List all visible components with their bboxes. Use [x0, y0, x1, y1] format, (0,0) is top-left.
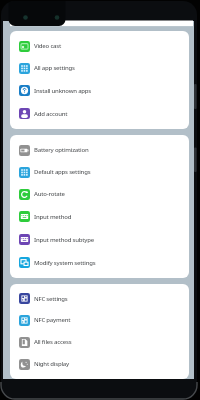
staticText: Battery optimization: [34, 146, 89, 154]
staticText: Night display: [34, 360, 69, 368]
button[interactable]: NFC payment: [10, 309, 189, 331]
button[interactable]: Input method subtype: [10, 228, 189, 251]
button[interactable]: Modify system settings: [10, 251, 189, 274]
button[interactable]: All files access: [10, 331, 189, 353]
staticText: NFC payment: [34, 316, 71, 324]
staticText: Auto-rotate: [34, 190, 65, 198]
staticText: Video cast: [34, 42, 62, 50]
staticText: Input method: [34, 213, 72, 221]
button[interactable]: All app settings: [10, 57, 189, 79]
staticText: Add account: [34, 110, 68, 118]
staticText: Modify system settings: [34, 259, 96, 267]
button[interactable]: Default apps settings: [10, 161, 189, 183]
staticText: All app settings: [34, 64, 75, 72]
staticText: All files access: [34, 338, 72, 346]
button[interactable]: Auto-rotate: [10, 183, 189, 205]
button[interactable]: Battery optimization: [10, 139, 189, 161]
button[interactable]: Night display: [10, 353, 189, 375]
button[interactable]: Input method: [10, 205, 189, 228]
staticText: Install unknown apps: [34, 87, 92, 95]
button[interactable]: Video cast: [10, 35, 189, 57]
button[interactable]: NFC settings: [10, 288, 189, 309]
button[interactable]: Add account: [10, 102, 189, 125]
staticText: Input method subtype: [34, 236, 94, 244]
button[interactable]: Install unknown apps: [10, 79, 189, 102]
staticText: Default apps settings: [34, 168, 91, 176]
staticText: NFC settings: [34, 295, 68, 303]
